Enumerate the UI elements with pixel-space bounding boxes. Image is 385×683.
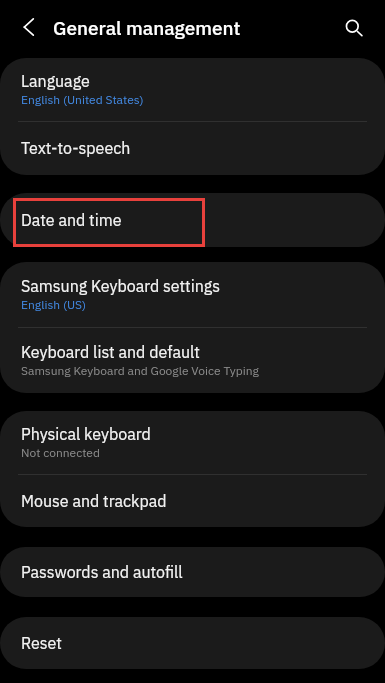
staticText: Keyboard list and default [21,342,200,363]
staticText: Language [21,71,90,92]
button[interactable]: Date and time [0,193,385,247]
button[interactable]: Text-to-speech [0,122,385,175]
button[interactable]: Search [332,5,380,53]
staticText: Date and time [21,210,122,231]
staticText: English (US) [21,297,87,313]
button[interactable]: Navigate up [5,5,53,53]
button[interactable]: Samsung Keyboard settings [0,262,385,327]
staticText: Samsung Keyboard settings [21,276,221,297]
staticText: Passwords and autofill [21,562,183,583]
staticText: Text-to-speech [21,138,131,159]
button[interactable]: Mouse and trackpad [0,475,385,527]
button[interactable]: Passwords and autofill [0,547,385,597]
button[interactable]: Keyboard list and default [0,328,385,393]
button[interactable]: Reset [0,617,385,669]
staticText: English (United States) [21,92,144,108]
staticText: Physical keyboard [21,424,151,445]
button[interactable]: Physical keyboard [0,411,385,474]
staticText: Samsung Keyboard and Google Voice Typing [21,363,259,379]
staticText: Not connected [21,445,100,461]
staticText: Mouse and trackpad [21,491,167,512]
staticText: General management [53,16,241,41]
button[interactable]: Language [0,58,385,121]
staticText: Reset [21,633,62,654]
